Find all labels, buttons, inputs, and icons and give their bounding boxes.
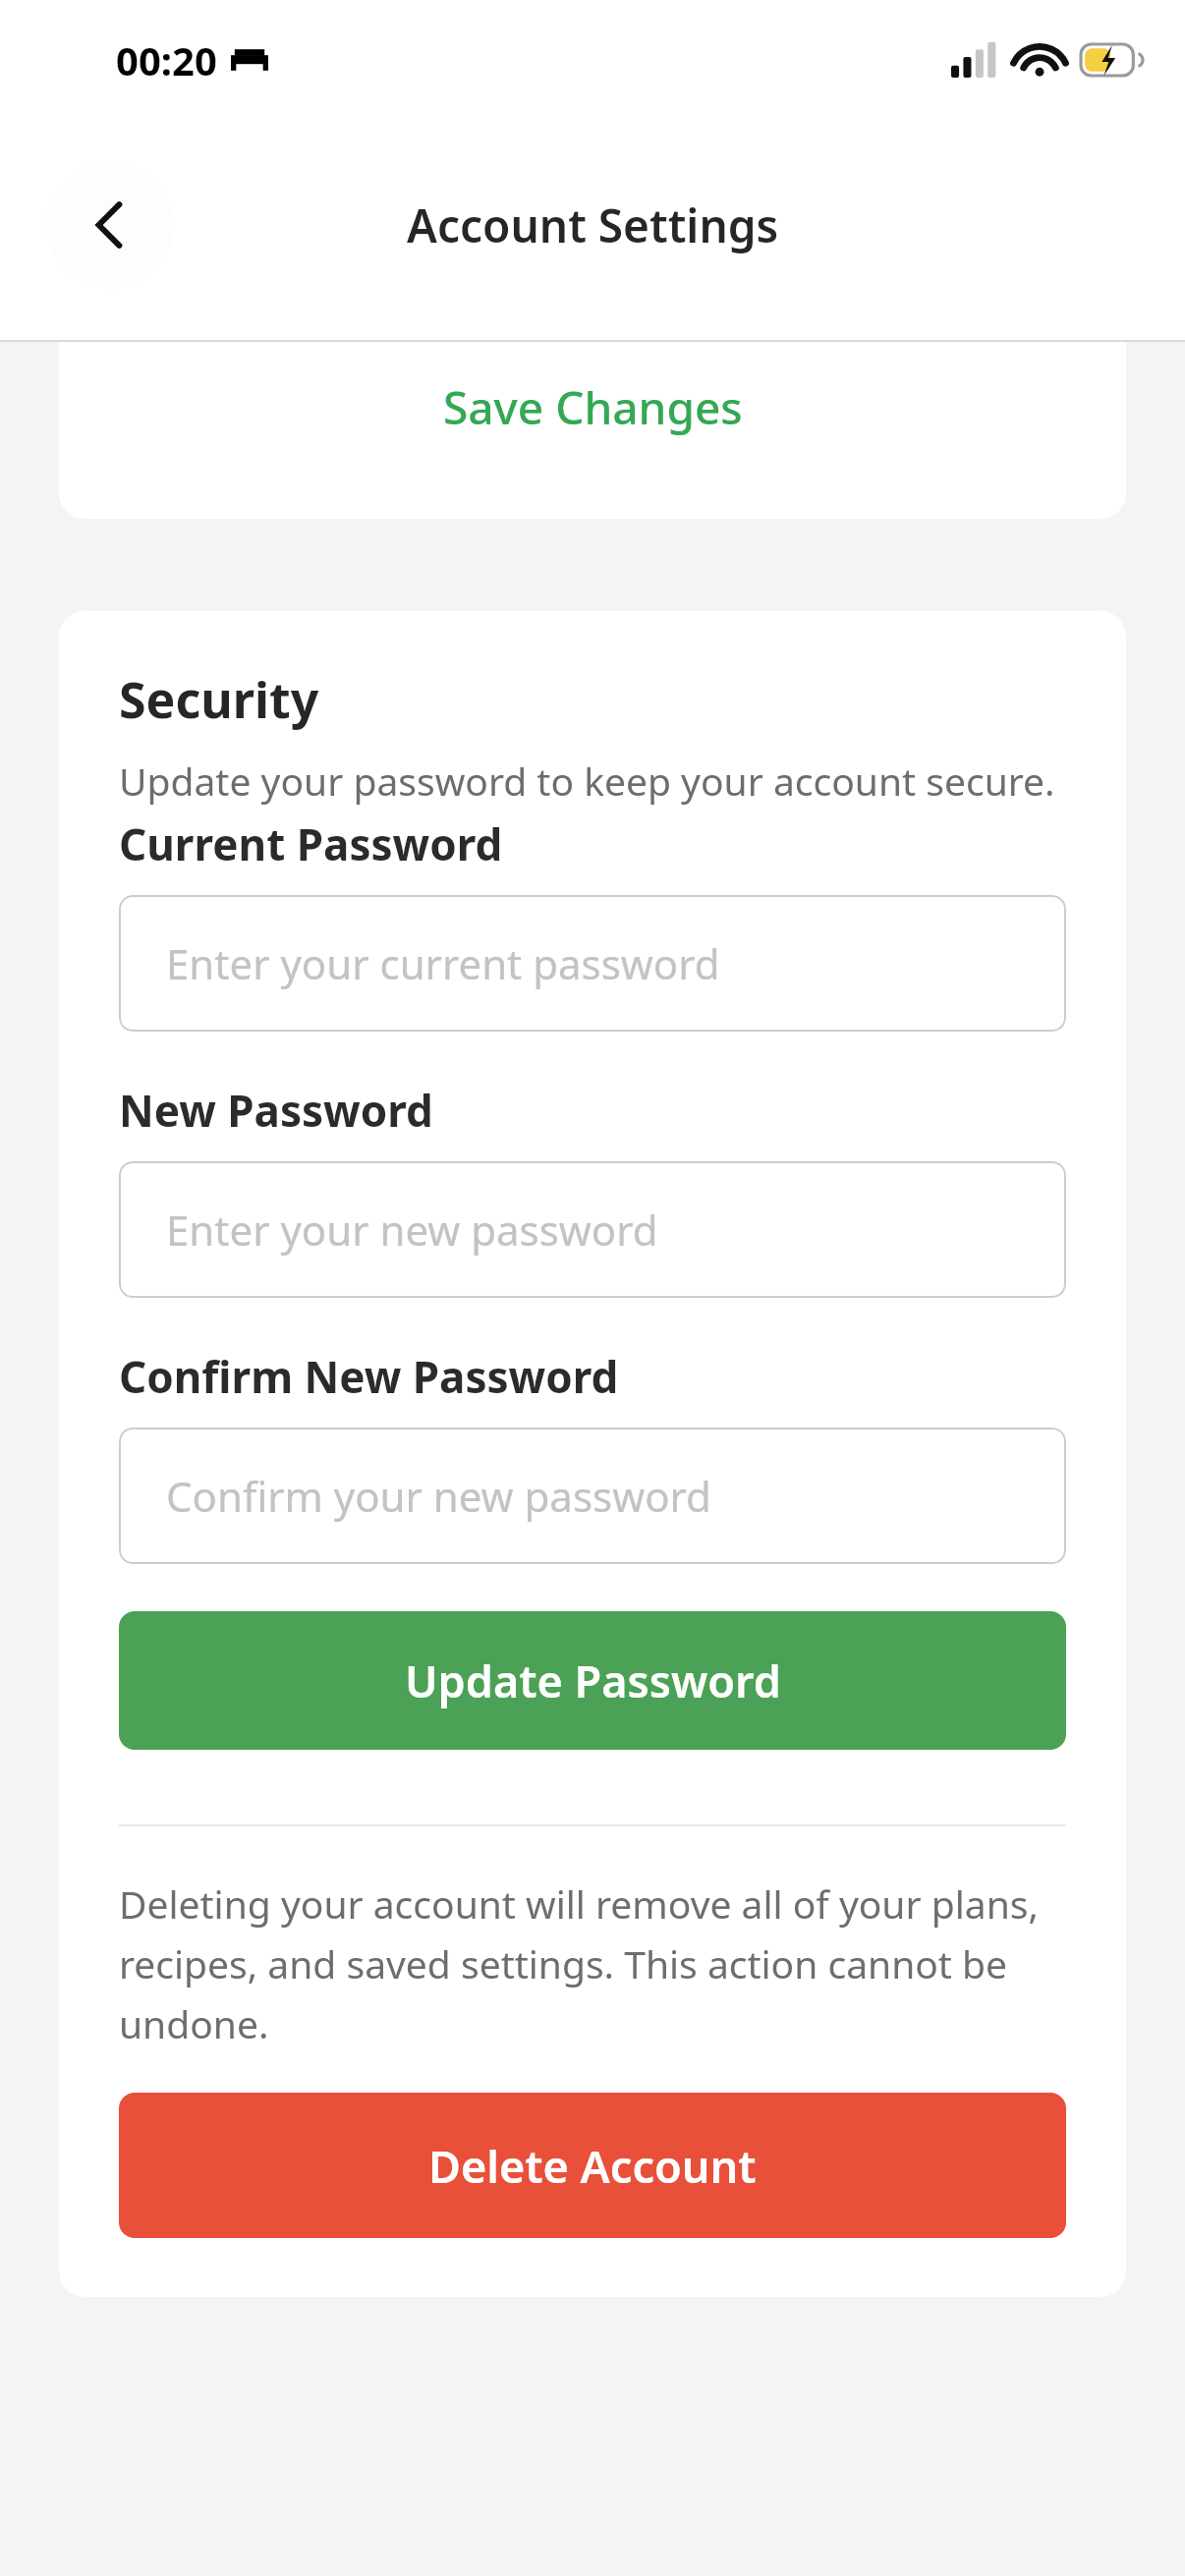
staticText: Account Settings bbox=[407, 195, 779, 256]
staticText: Confirm New Password bbox=[119, 1347, 619, 1406]
staticText: Delete Account bbox=[428, 2136, 757, 2196]
staticText: Current Password bbox=[119, 814, 503, 873]
staticText: 00:20 bbox=[116, 33, 217, 86]
staticText: Enter your current password bbox=[166, 935, 720, 991]
button[interactable]: Enter your new password bbox=[119, 1161, 1066, 1298]
button[interactable]: Enter your current password bbox=[119, 895, 1066, 1032]
button[interactable]: Save Changes bbox=[59, 342, 1126, 519]
staticText: Confirm your new password bbox=[166, 1468, 711, 1524]
staticText: Save Changes bbox=[443, 376, 743, 438]
staticText: New Password bbox=[119, 1081, 433, 1140]
staticText: Update Password bbox=[405, 1651, 781, 1710]
staticText: Update your password to keep your accoun… bbox=[119, 755, 1055, 807]
button[interactable]: Update Password bbox=[119, 1611, 1066, 1750]
button[interactable]: Confirm your new password bbox=[119, 1428, 1066, 1564]
button[interactable]: Delete Account bbox=[119, 2093, 1066, 2238]
staticText: Enter your new password bbox=[166, 1202, 658, 1258]
staticText: Deleting your account will remove all of… bbox=[119, 1877, 1066, 2049]
staticText: Security bbox=[119, 666, 319, 733]
button[interactable]: Back bbox=[46, 161, 174, 289]
